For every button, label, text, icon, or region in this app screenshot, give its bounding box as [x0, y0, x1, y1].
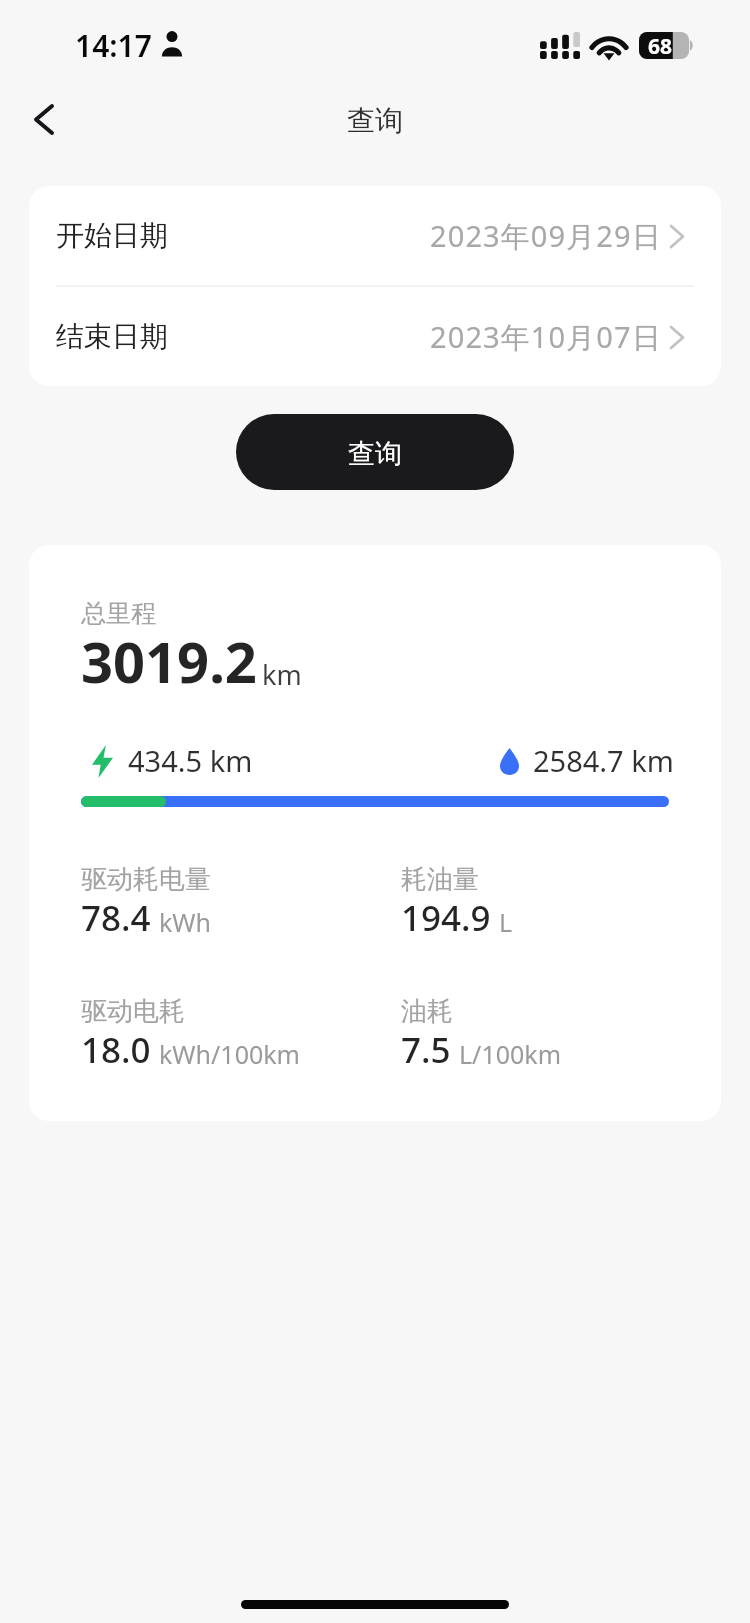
- staticText: L/100km: [459, 1037, 562, 1071]
- staticText: 开始日期: [56, 218, 168, 253]
- staticText: 2584.7 km: [533, 741, 674, 775]
- staticText: 2023年09月29日: [430, 216, 662, 256]
- staticText: 14:17: [75, 25, 152, 66]
- staticText: 194.9: [401, 894, 491, 942]
- staticText: km: [262, 656, 302, 693]
- staticText: kWh: [159, 905, 212, 939]
- staticText: L: [499, 905, 513, 939]
- staticText: 结束日期: [56, 319, 168, 354]
- staticText: 7.5: [401, 1026, 451, 1074]
- staticText: 3019.2: [81, 623, 257, 699]
- staticText: 油耗: [401, 995, 453, 1028]
- staticText: 驱动耗电量: [81, 863, 211, 896]
- staticText: 总里程: [81, 598, 156, 629]
- staticText: 耗油量: [401, 863, 479, 896]
- staticText: 78.4: [81, 894, 151, 942]
- button[interactable]: Back: [13, 88, 75, 150]
- staticText: 2023年10月07日: [430, 317, 662, 357]
- staticText: 查询: [347, 103, 403, 138]
- button[interactable]: 查询: [236, 414, 514, 490]
- staticText: 18.0: [81, 1026, 151, 1074]
- staticText: 68: [648, 32, 673, 59]
- button[interactable]: 结束日期: [29, 287, 721, 386]
- staticText: kWh/100km: [159, 1037, 300, 1071]
- button[interactable]: 开始日期: [29, 186, 721, 285]
- staticText: 查询: [348, 437, 402, 471]
- staticText: 434.5 km: [128, 741, 253, 775]
- staticText: 驱动电耗: [81, 995, 185, 1028]
